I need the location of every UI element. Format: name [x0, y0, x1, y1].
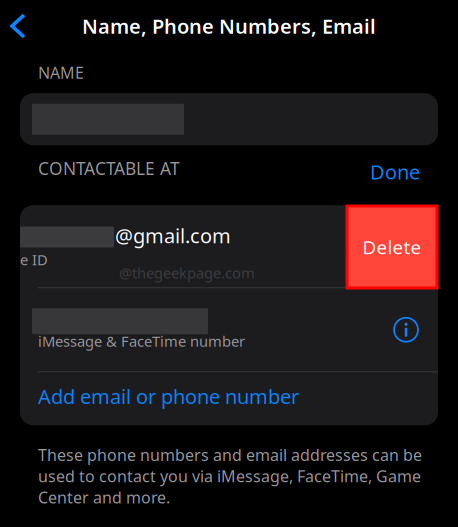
staticText: @thegeekpage.com	[119, 263, 255, 282]
staticText: Done	[370, 158, 420, 185]
button[interactable]: More info	[393, 317, 419, 343]
button[interactable]: Back	[0, 4, 40, 48]
button[interactable]: Delete	[0, 0, 437, 288]
staticText: e ID	[20, 250, 48, 269]
staticText: iMessage & FaceTime number	[38, 331, 245, 351]
staticText: Delete	[362, 235, 421, 259]
staticText: These phone numbers and email addresses …	[38, 444, 422, 508]
button[interactable]: Done	[370, 151, 420, 185]
staticText: CONTACTABLE AT	[38, 157, 180, 180]
staticText: Add email or phone number	[38, 383, 299, 410]
staticText: NAME	[38, 62, 84, 83]
staticText: @gmail.com	[115, 222, 231, 249]
staticText: Name, Phone Numbers, Email	[82, 13, 376, 39]
button[interactable]: Add email or phone number	[20, 372, 438, 425]
